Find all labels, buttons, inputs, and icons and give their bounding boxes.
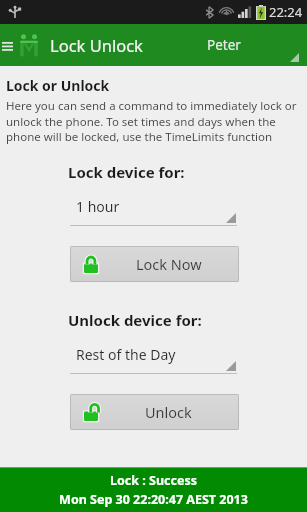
staticText: Unlock device for:: [68, 310, 202, 330]
staticText: 22:24: [269, 3, 303, 21]
staticText: Lock : Success: [110, 472, 197, 489]
button[interactable]: Lock : Success: [0, 468, 307, 512]
button[interactable]: Open navigation drawer: [0, 24, 14, 66]
staticText: Lock Now: [136, 254, 202, 274]
button[interactable]: Peter: [199, 24, 307, 66]
staticText: Rest of the Day: [76, 345, 176, 364]
staticText: Here you can send a command to immediate…: [6, 98, 299, 144]
button[interactable]: Lock Now: [70, 246, 239, 282]
button[interactable]: 1 hour: [70, 192, 237, 226]
staticText: Lock device for:: [68, 162, 185, 182]
staticText: Lock Unlock: [50, 34, 143, 56]
button[interactable]: Unlock: [70, 394, 239, 430]
staticText: Mon Sep 30 22:20:47 AEST 2013: [59, 491, 248, 508]
staticText: 1 hour: [76, 197, 120, 216]
staticText: Lock or Unlock: [6, 76, 110, 95]
button[interactable]: App icon: [14, 24, 44, 66]
staticText: Peter: [207, 36, 241, 54]
button[interactable]: Rest of the Day: [70, 340, 237, 374]
staticText: Unlock: [145, 402, 192, 422]
